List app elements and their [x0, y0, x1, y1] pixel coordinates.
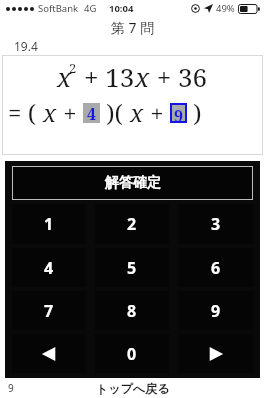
button[interactable]: 8 — [95, 291, 169, 330]
staticText: 4 — [87, 103, 97, 123]
staticText: x — [135, 59, 150, 94]
staticText: 1 — [44, 213, 54, 235]
staticText: + — [57, 96, 83, 129]
button[interactable]: 2 — [95, 204, 169, 244]
staticText: 7 — [44, 300, 54, 322]
staticText: 3 — [211, 213, 221, 235]
staticText: SoftBank — [38, 2, 79, 15]
staticText: 49% — [216, 2, 235, 15]
staticText: = ( — [8, 96, 43, 129]
button[interactable]: Next — [179, 334, 253, 373]
staticText: 第 7 問 — [0, 18, 265, 37]
staticText: 5 — [127, 257, 137, 279]
staticText: x — [57, 59, 72, 94]
staticText: x — [130, 96, 144, 129]
staticText: 8 — [127, 300, 137, 322]
staticText: 4G — [84, 2, 97, 15]
staticText: 2 — [69, 59, 77, 77]
button[interactable]: 4 — [83, 103, 100, 123]
staticText: x — [43, 96, 57, 129]
button[interactable]: 9 — [172, 105, 185, 121]
staticText: 2 — [127, 213, 137, 235]
staticText: 19.4 — [14, 38, 38, 54]
button[interactable]: 5 — [95, 248, 169, 287]
button[interactable]: Previous — [12, 334, 85, 373]
staticText: トップへ戻る — [96, 381, 170, 396]
button[interactable]: 0 — [95, 334, 169, 373]
button[interactable]: 6 — [179, 248, 253, 287]
staticText: 0 — [127, 343, 137, 365]
button[interactable]: 3 — [179, 204, 253, 244]
staticText: ) — [187, 96, 202, 129]
button[interactable]: 4 — [12, 248, 85, 287]
button[interactable]: トップへ戻る — [90, 379, 176, 398]
staticText: 9 — [174, 105, 184, 121]
button[interactable]: 1 — [12, 204, 85, 244]
button[interactable]: 解答確定 — [12, 166, 253, 200]
button[interactable]: 7 — [12, 291, 85, 330]
staticText: + 36 — [150, 59, 208, 94]
button[interactable]: 9 — [179, 291, 253, 330]
staticText: 9 — [211, 300, 221, 322]
staticText: )( — [100, 96, 130, 129]
staticText: + — [144, 96, 170, 129]
staticText: 6 — [211, 257, 221, 279]
staticText: 4 — [44, 257, 54, 279]
staticText: 解答確定 — [105, 174, 161, 192]
staticText: + 13 — [84, 59, 135, 94]
staticText: 10:04 — [109, 2, 134, 15]
staticText: 9 — [8, 381, 14, 395]
